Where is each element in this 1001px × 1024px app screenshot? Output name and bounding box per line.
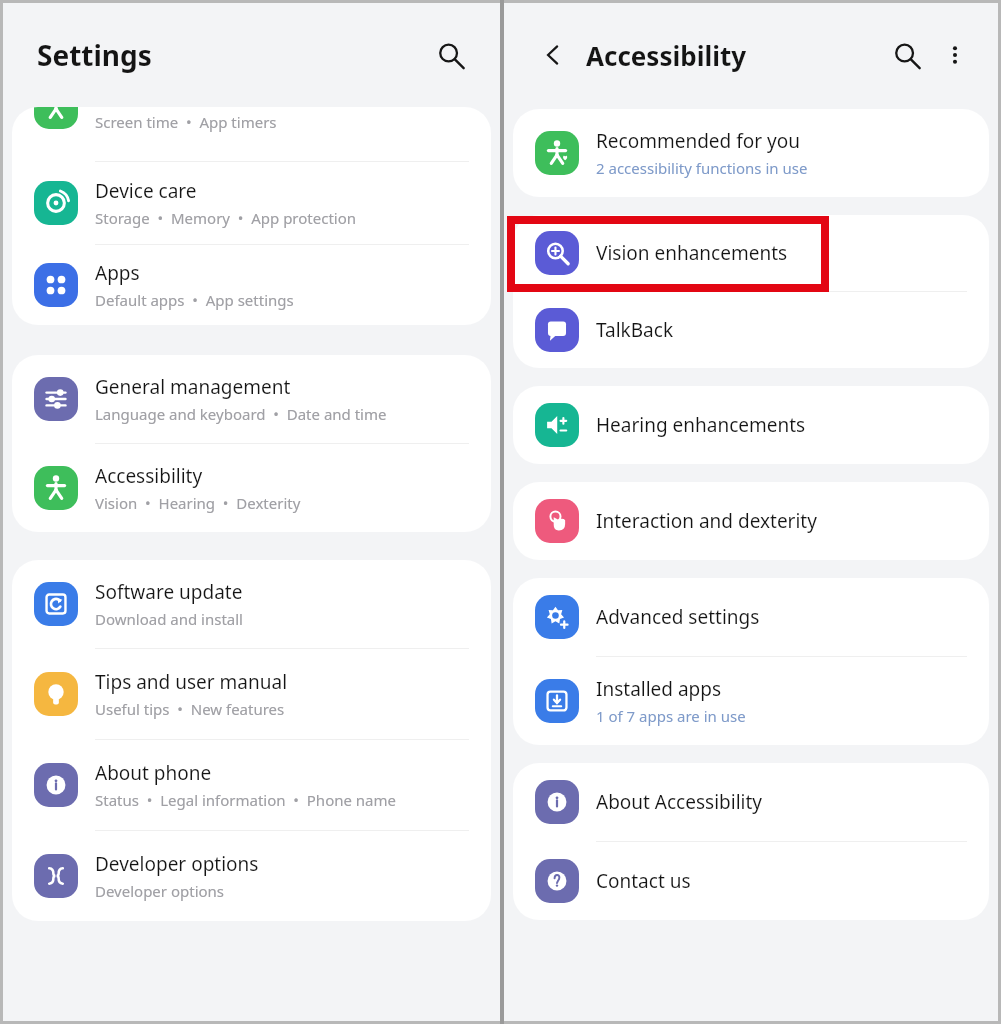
staticText: About Accessibility <box>596 789 763 815</box>
staticText: About phone <box>95 760 212 786</box>
button[interactable]: Tips and user manual <box>12 649 491 739</box>
staticText: Software update <box>95 579 243 605</box>
button[interactable]: Advanced settings <box>513 578 989 656</box>
staticText: Contact us <box>596 868 691 894</box>
staticText: Vision enhancements <box>596 240 788 266</box>
button[interactable]: Developer options <box>12 831 491 921</box>
button[interactable]: Apps <box>12 245 491 325</box>
button[interactable]: More options <box>936 36 974 74</box>
button[interactable]: Installed apps <box>513 657 989 745</box>
staticText: Developer options <box>95 851 259 877</box>
staticText: Hearing enhancements <box>596 412 806 438</box>
button[interactable]: Device care <box>12 162 491 244</box>
button[interactable]: TalkBack <box>513 292 989 368</box>
button[interactable]: General management <box>12 355 491 443</box>
staticText: 1 of 7 apps are in use <box>596 706 746 726</box>
button[interactable]: Software update <box>12 560 491 648</box>
button[interactable]: About phone <box>12 740 491 830</box>
staticText: Tips and user manual <box>95 669 288 695</box>
staticText: Status • Legal information • Phone name <box>95 790 397 810</box>
staticText: Vision • Hearing • Dexterity <box>95 493 301 513</box>
button[interactable]: Back <box>534 36 572 74</box>
staticText: 2 accessibility functions in use <box>596 158 808 178</box>
button[interactable]: Hearing enhancements <box>513 386 989 464</box>
staticText: Settings <box>37 36 152 74</box>
staticText: Apps <box>95 260 140 286</box>
staticText: TalkBack <box>596 317 674 343</box>
staticText: Screen time • App timers <box>95 112 277 132</box>
staticText: Developer options <box>95 881 225 901</box>
button[interactable]: Search <box>886 35 926 75</box>
staticText: Storage • Memory • App protection <box>95 208 357 228</box>
staticText: Useful tips • New features <box>95 699 285 719</box>
staticText: Advanced settings <box>596 604 760 630</box>
staticText: Accessibility <box>95 463 203 489</box>
staticText: Download and install <box>95 609 243 629</box>
staticText: Default apps • App settings <box>95 290 294 310</box>
staticText: Accessibility <box>586 38 747 73</box>
button[interactable]: Vision enhancements <box>513 215 989 291</box>
button[interactable]: Recommended for you <box>513 109 989 197</box>
staticText: Recommended for you <box>596 128 800 154</box>
button[interactable]: Search <box>430 35 470 75</box>
button[interactable]: Accessibility <box>12 444 491 532</box>
staticText: Language and keyboard • Date and time <box>95 404 387 424</box>
button[interactable]: Contact us <box>513 842 989 920</box>
button[interactable]: Interaction and dexterity <box>513 482 989 560</box>
button[interactable]: controls <box>12 107 491 161</box>
staticText: General management <box>95 374 291 400</box>
staticText: Interaction and dexterity <box>596 508 817 534</box>
button[interactable]: About Accessibility <box>513 763 989 841</box>
staticText: Device care <box>95 178 197 204</box>
staticText: Installed apps <box>596 676 722 702</box>
